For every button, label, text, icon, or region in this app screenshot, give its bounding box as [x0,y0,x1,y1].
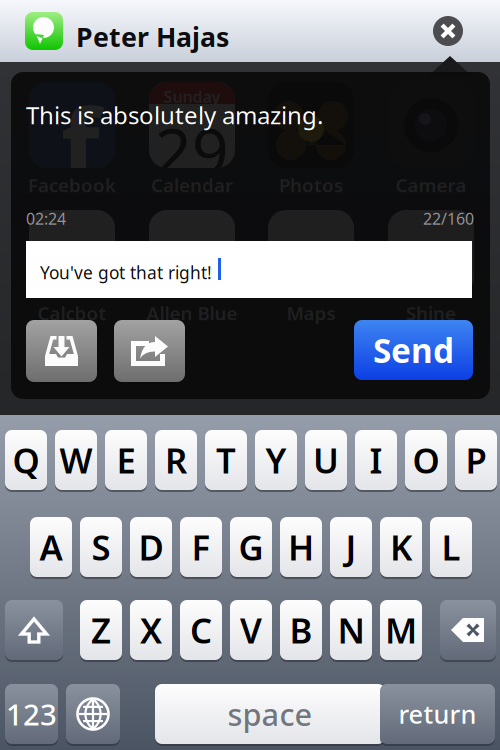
button[interactable]: W [55,430,97,490]
staticText: D [138,524,163,570]
staticText: 29 [155,108,229,193]
staticText: B [289,607,312,653]
staticText: I [369,437,382,483]
button[interactable]: J [330,517,372,577]
staticText: Peter Hajas [76,19,229,54]
button[interactable]: Q [5,430,47,490]
button[interactable]: D [130,517,172,577]
button[interactable]: Archive [26,320,97,382]
button[interactable]: Share [114,320,185,382]
button[interactable]: X [130,600,172,660]
button[interactable]: L [430,517,472,577]
staticText: Maps [286,301,335,325]
staticText: Facebook [28,173,116,197]
staticText: Q [12,437,39,483]
button[interactable]: M [380,600,422,660]
staticText: J [345,524,356,570]
staticText: R [165,437,187,483]
button[interactable]: V [230,600,272,660]
staticText: Sunday [163,86,220,107]
button[interactable]: A [30,517,72,577]
staticText: Calcbot [37,301,106,325]
button[interactable]: C [180,600,222,660]
staticText: return [398,697,476,731]
staticText: N [337,607,364,653]
button[interactable]: K [380,517,422,577]
staticText: Camera [395,173,466,197]
staticText: X [140,607,162,653]
button[interactable]: return [380,684,495,744]
staticText: P [465,437,486,483]
button[interactable]: Next keyboard [66,684,120,744]
staticText: Send [373,328,454,372]
staticText: You've got that right! [40,261,212,284]
button[interactable]: G [230,517,272,577]
staticText: T [216,437,236,483]
button[interactable]: R [155,430,197,490]
button[interactable]: I [355,430,397,490]
staticText: A [39,524,62,570]
staticText: This is absolutely amazing. [26,99,323,131]
button[interactable]: S [80,517,122,577]
button[interactable]: H [280,517,322,577]
staticText: 22/160 [423,208,474,229]
button[interactable]: T [205,430,247,490]
button[interactable]: Delete [440,600,496,660]
button[interactable]: 123 [5,684,58,744]
staticText: Photos [279,173,343,197]
button[interactable]: B [280,600,322,660]
button[interactable]: E [105,430,147,490]
button[interactable]: P [455,430,497,490]
staticText: 123 [6,694,57,733]
button[interactable]: U [305,430,347,490]
button[interactable]: Shift [5,600,63,660]
button[interactable]: Y [255,430,297,490]
staticText: Z [91,607,111,653]
staticText: f [60,76,99,210]
staticText: L [441,524,460,570]
staticText: Calendar [151,173,233,197]
staticText: W [59,437,92,483]
button[interactable]: F [180,517,222,577]
button[interactable]: Close [429,12,467,50]
button[interactable]: space [155,684,385,744]
staticText: C [190,607,212,653]
button[interactable]: N [330,600,372,660]
staticText: 7 6 5 [166,268,217,290]
staticText: K [390,524,412,570]
staticText: Y [265,437,286,483]
button[interactable]: Send [354,320,473,380]
staticText: S [91,524,110,570]
staticText: H [288,524,314,570]
staticText: E [116,437,135,483]
staticText: 02:24 [26,208,66,229]
staticText: space [227,694,312,734]
staticText: G [238,524,263,570]
button[interactable]: Z [80,600,122,660]
staticText: F [191,524,210,570]
staticText: V [240,607,262,653]
staticText: U [313,437,339,483]
button[interactable]: O [405,430,447,490]
staticText: O [412,437,439,483]
staticText: Allen Blue [146,301,237,325]
staticText: Shine [406,301,456,325]
staticText: M [385,607,417,653]
